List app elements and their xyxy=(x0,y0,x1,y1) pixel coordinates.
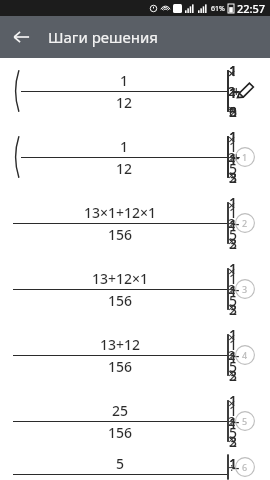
staticText: 12 xyxy=(116,159,133,178)
button[interactable]: 13+12 xyxy=(0,322,270,388)
staticText: 156 xyxy=(108,225,133,244)
staticText: 4 xyxy=(242,349,248,361)
staticText: 5 xyxy=(116,454,125,473)
staticText: 61% xyxy=(211,4,225,14)
staticText: 13+12 xyxy=(100,335,141,354)
button[interactable]: 13+12×1 xyxy=(0,256,270,322)
button[interactable]: 1 xyxy=(0,58,270,124)
button[interactable]: Шаг 6 xyxy=(235,457,255,477)
staticText: 22:57 xyxy=(237,1,266,16)
staticText: 3 xyxy=(242,283,248,295)
staticText: Шаги решения xyxy=(48,27,158,47)
button[interactable]: Шаг 4 xyxy=(235,345,255,365)
button[interactable]: 5 xyxy=(0,454,270,480)
staticText: 1 xyxy=(120,71,129,90)
button[interactable]: 13×1+12×1 xyxy=(0,190,270,256)
staticText: 1 xyxy=(242,151,248,163)
staticText: 6 xyxy=(242,461,248,473)
button[interactable]: 25 xyxy=(0,388,270,454)
staticText: 5 xyxy=(242,415,248,427)
button[interactable]: Шаг 2 xyxy=(235,213,255,233)
staticText: 156 xyxy=(108,423,133,442)
staticText: 13×1+12×1 xyxy=(84,203,157,222)
staticText: 1 xyxy=(120,137,129,156)
staticText: 12 xyxy=(116,93,133,112)
staticText: 25 xyxy=(112,401,129,420)
staticText: 156 xyxy=(108,357,133,376)
button[interactable]: 1 xyxy=(0,124,270,190)
button[interactable]: Изменить xyxy=(234,80,256,102)
staticText: 13+12×1 xyxy=(92,269,149,288)
button[interactable]: Шаг 3 xyxy=(235,279,255,299)
staticText: 156 xyxy=(108,291,133,310)
button[interactable]: Шаг 5 xyxy=(235,411,255,431)
button[interactable]: Шаг 1 xyxy=(235,147,255,167)
staticText: 2 xyxy=(242,217,248,229)
button[interactable]: Назад xyxy=(0,16,42,58)
